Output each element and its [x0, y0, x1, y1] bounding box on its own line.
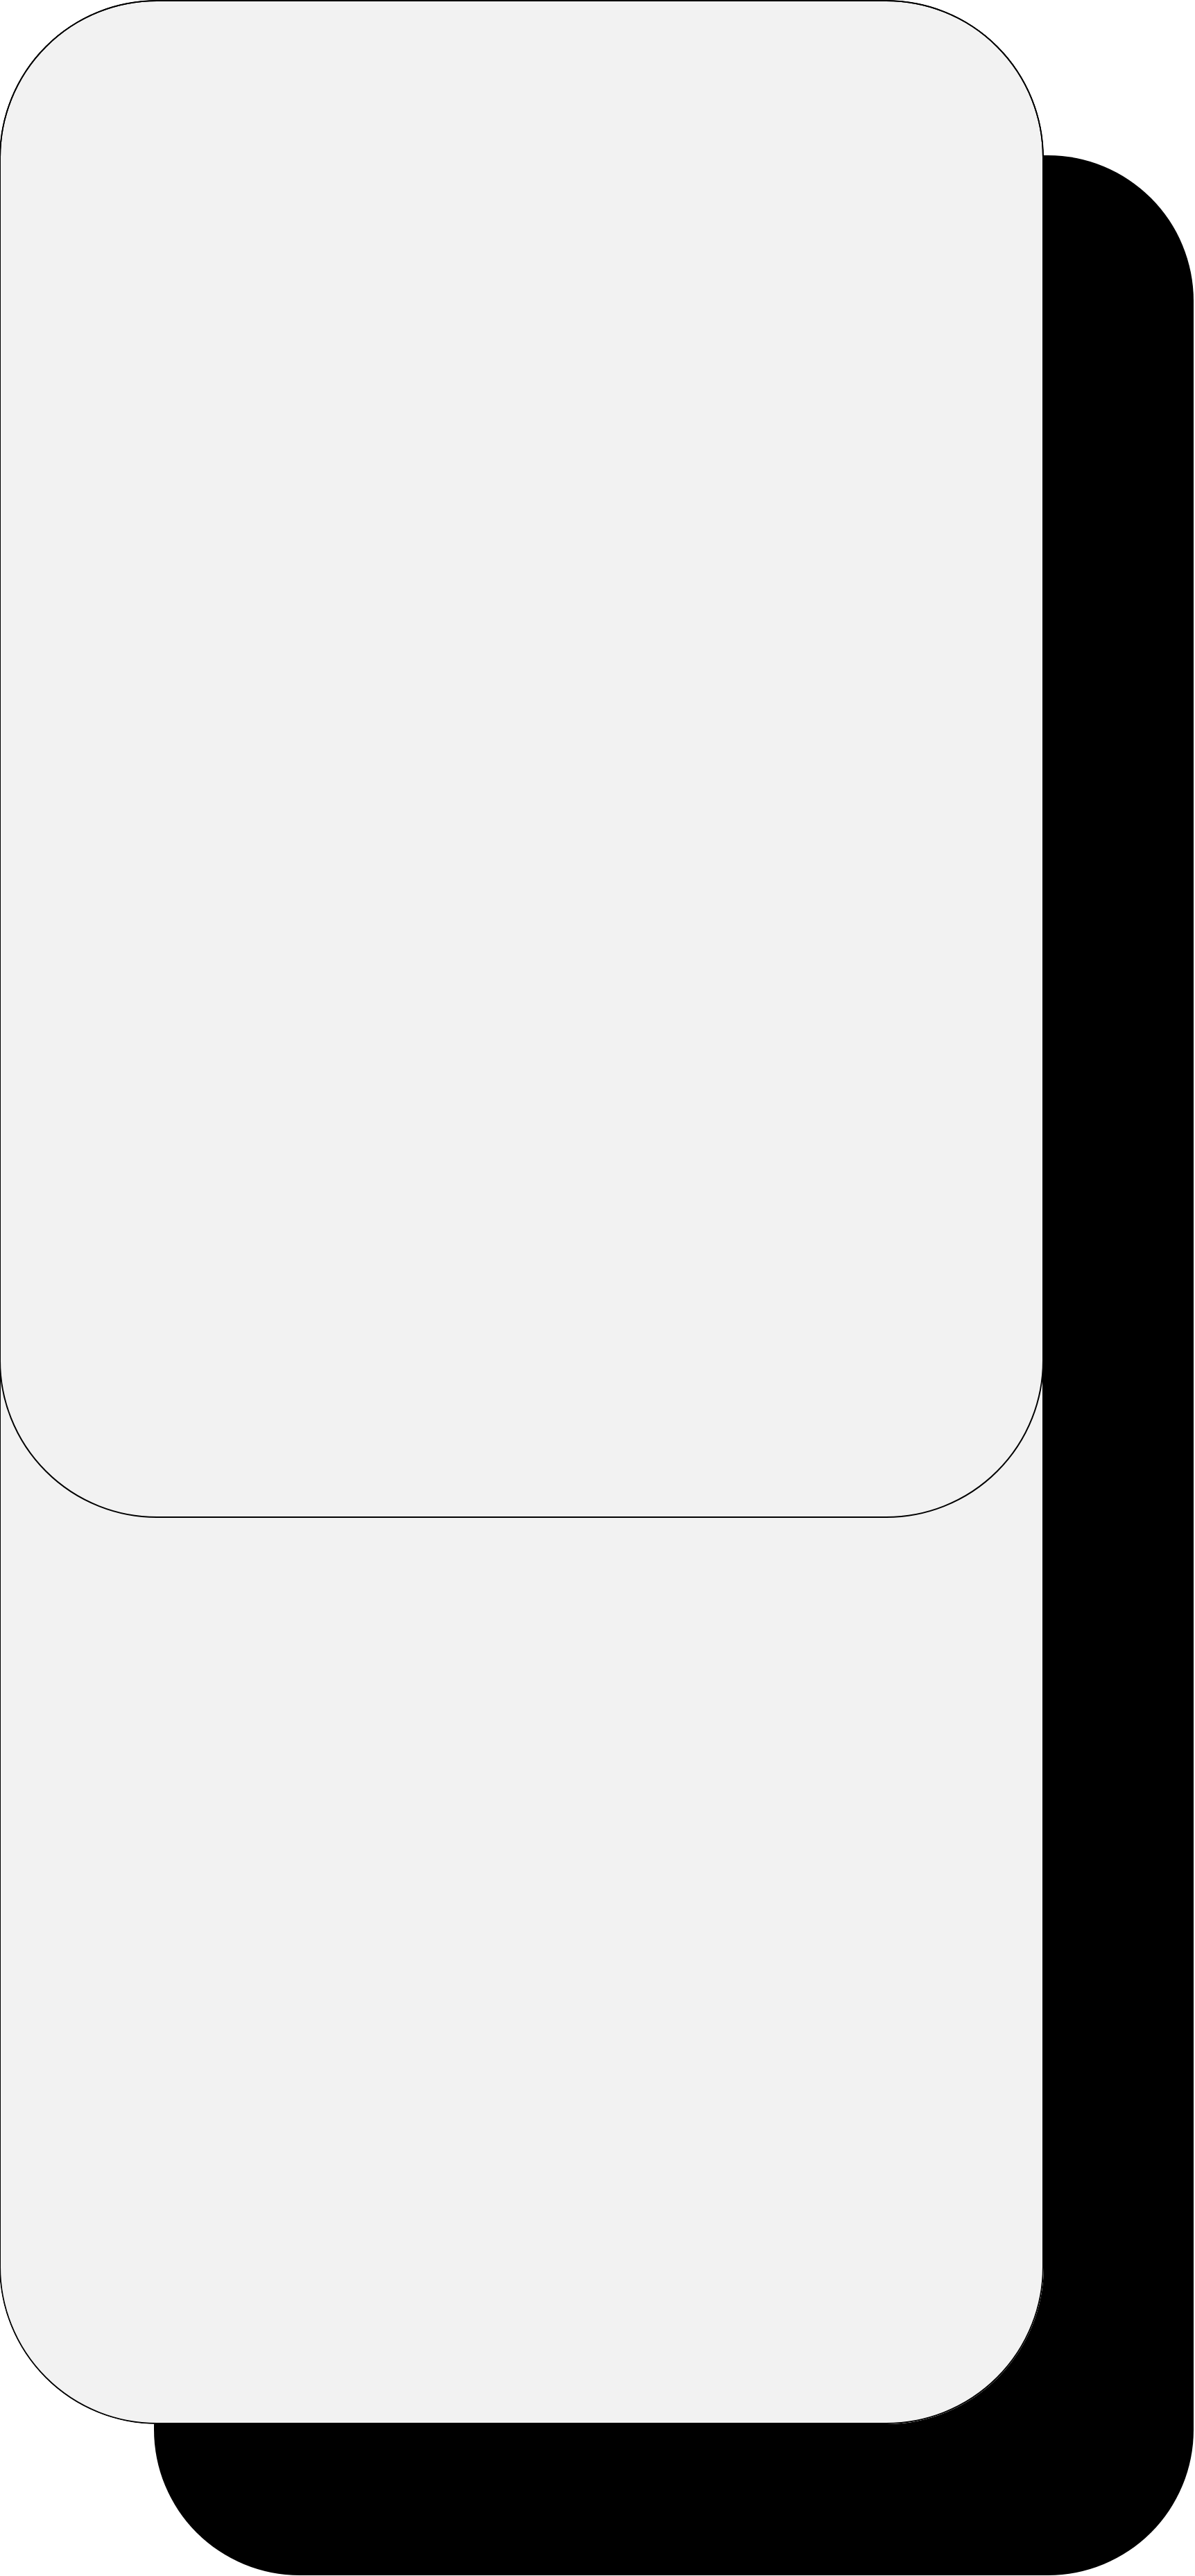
- button[interactable]: Secondary panel: [0, 1518, 1044, 2424]
- button[interactable]: Primary panel: [0, 0, 1044, 1518]
